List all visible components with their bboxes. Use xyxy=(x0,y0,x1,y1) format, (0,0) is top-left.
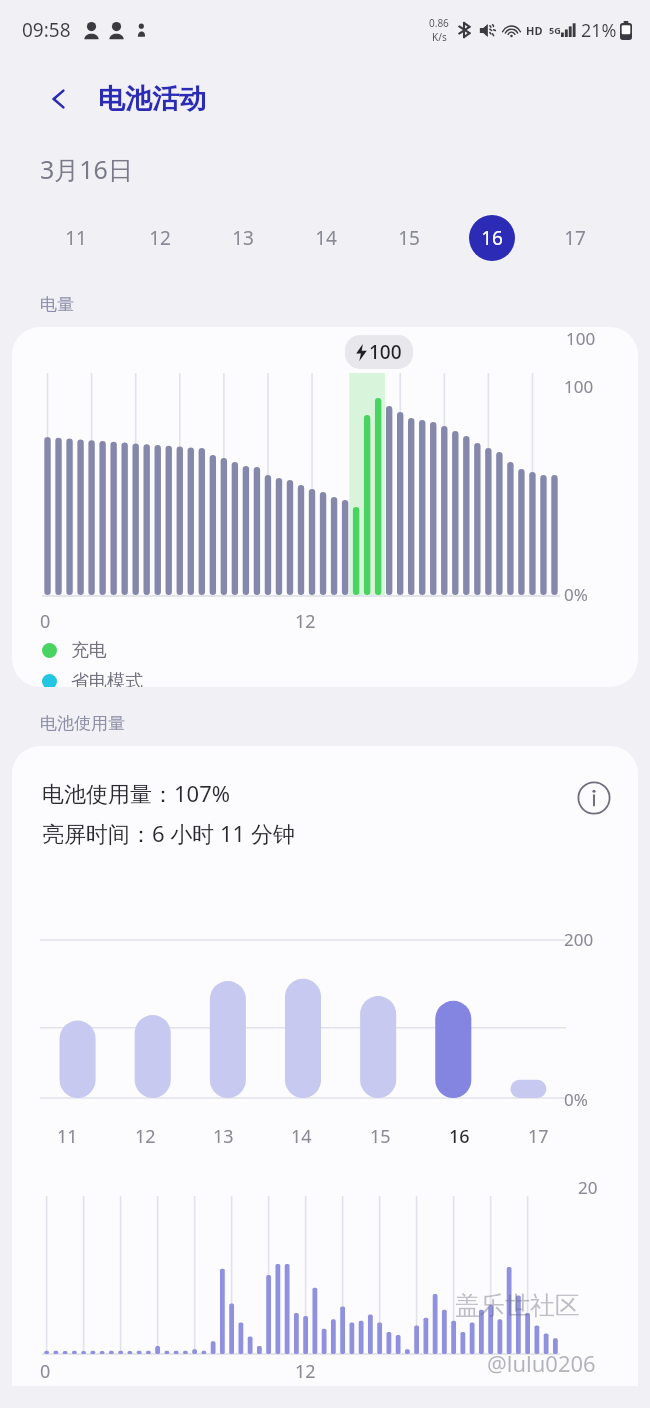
staticText: 12 xyxy=(149,225,171,251)
staticText: 16 xyxy=(481,225,503,251)
staticText: 0.86 xyxy=(429,16,449,30)
button[interactable]: 17 xyxy=(533,207,616,269)
staticText: 14 xyxy=(315,225,337,251)
staticText: 电池使用量 xyxy=(40,713,125,734)
staticText: 200 xyxy=(564,928,594,951)
staticText: 0% xyxy=(564,1088,588,1111)
staticText: 09:58 xyxy=(22,17,71,43)
staticText: 17 xyxy=(528,1124,549,1149)
staticText: 省电模式 xyxy=(71,670,143,687)
button[interactable]: 13 xyxy=(201,207,284,269)
staticText: 13 xyxy=(213,1124,234,1149)
staticText: 17 xyxy=(564,225,586,251)
staticText: 电池活动 xyxy=(98,82,206,116)
button[interactable]: 12 xyxy=(118,207,201,269)
staticText: @lulu0206 xyxy=(487,1348,596,1378)
staticText: 12 xyxy=(295,1359,316,1384)
staticText: 11 xyxy=(57,1124,78,1149)
staticText: 5G xyxy=(549,24,561,36)
staticText: HD xyxy=(526,23,543,38)
staticText: 0 xyxy=(40,1359,51,1384)
staticText: 14 xyxy=(291,1124,312,1149)
staticText: 20 xyxy=(578,1176,598,1199)
staticText: 12 xyxy=(295,609,316,634)
staticText: 盖乐世社区 xyxy=(455,1290,580,1321)
staticText: 16 xyxy=(449,1124,470,1149)
staticText: 100 xyxy=(564,375,594,398)
staticText: 电量 xyxy=(40,294,74,315)
staticText: 15 xyxy=(370,1124,391,1149)
staticText: 11 xyxy=(65,225,87,251)
staticText: 0% xyxy=(564,583,588,606)
staticText: 100 xyxy=(566,327,596,350)
staticText: 12 xyxy=(135,1124,156,1149)
staticText: 电池使用量：107% xyxy=(42,778,231,808)
staticText: K/s xyxy=(432,30,447,44)
staticText: 13 xyxy=(232,225,254,251)
button[interactable]: 16 xyxy=(450,207,533,269)
staticText: 3月16日 xyxy=(40,152,133,186)
staticText: 充电 xyxy=(71,639,107,662)
button[interactable]: 14 xyxy=(284,207,367,269)
button[interactable]: 返回 xyxy=(36,76,82,122)
button[interactable]: 详细信息 xyxy=(574,778,614,818)
staticText: 15 xyxy=(398,225,420,251)
staticText: 21% xyxy=(581,18,617,43)
staticText: 0 xyxy=(40,609,51,634)
staticText: 亮屏时间：6 小时 11 分钟 xyxy=(42,818,295,848)
button[interactable]: 100 xyxy=(12,327,638,687)
button[interactable]: 11 xyxy=(34,207,118,269)
staticText: 100 xyxy=(369,339,402,365)
button[interactable]: 15 xyxy=(367,207,450,269)
